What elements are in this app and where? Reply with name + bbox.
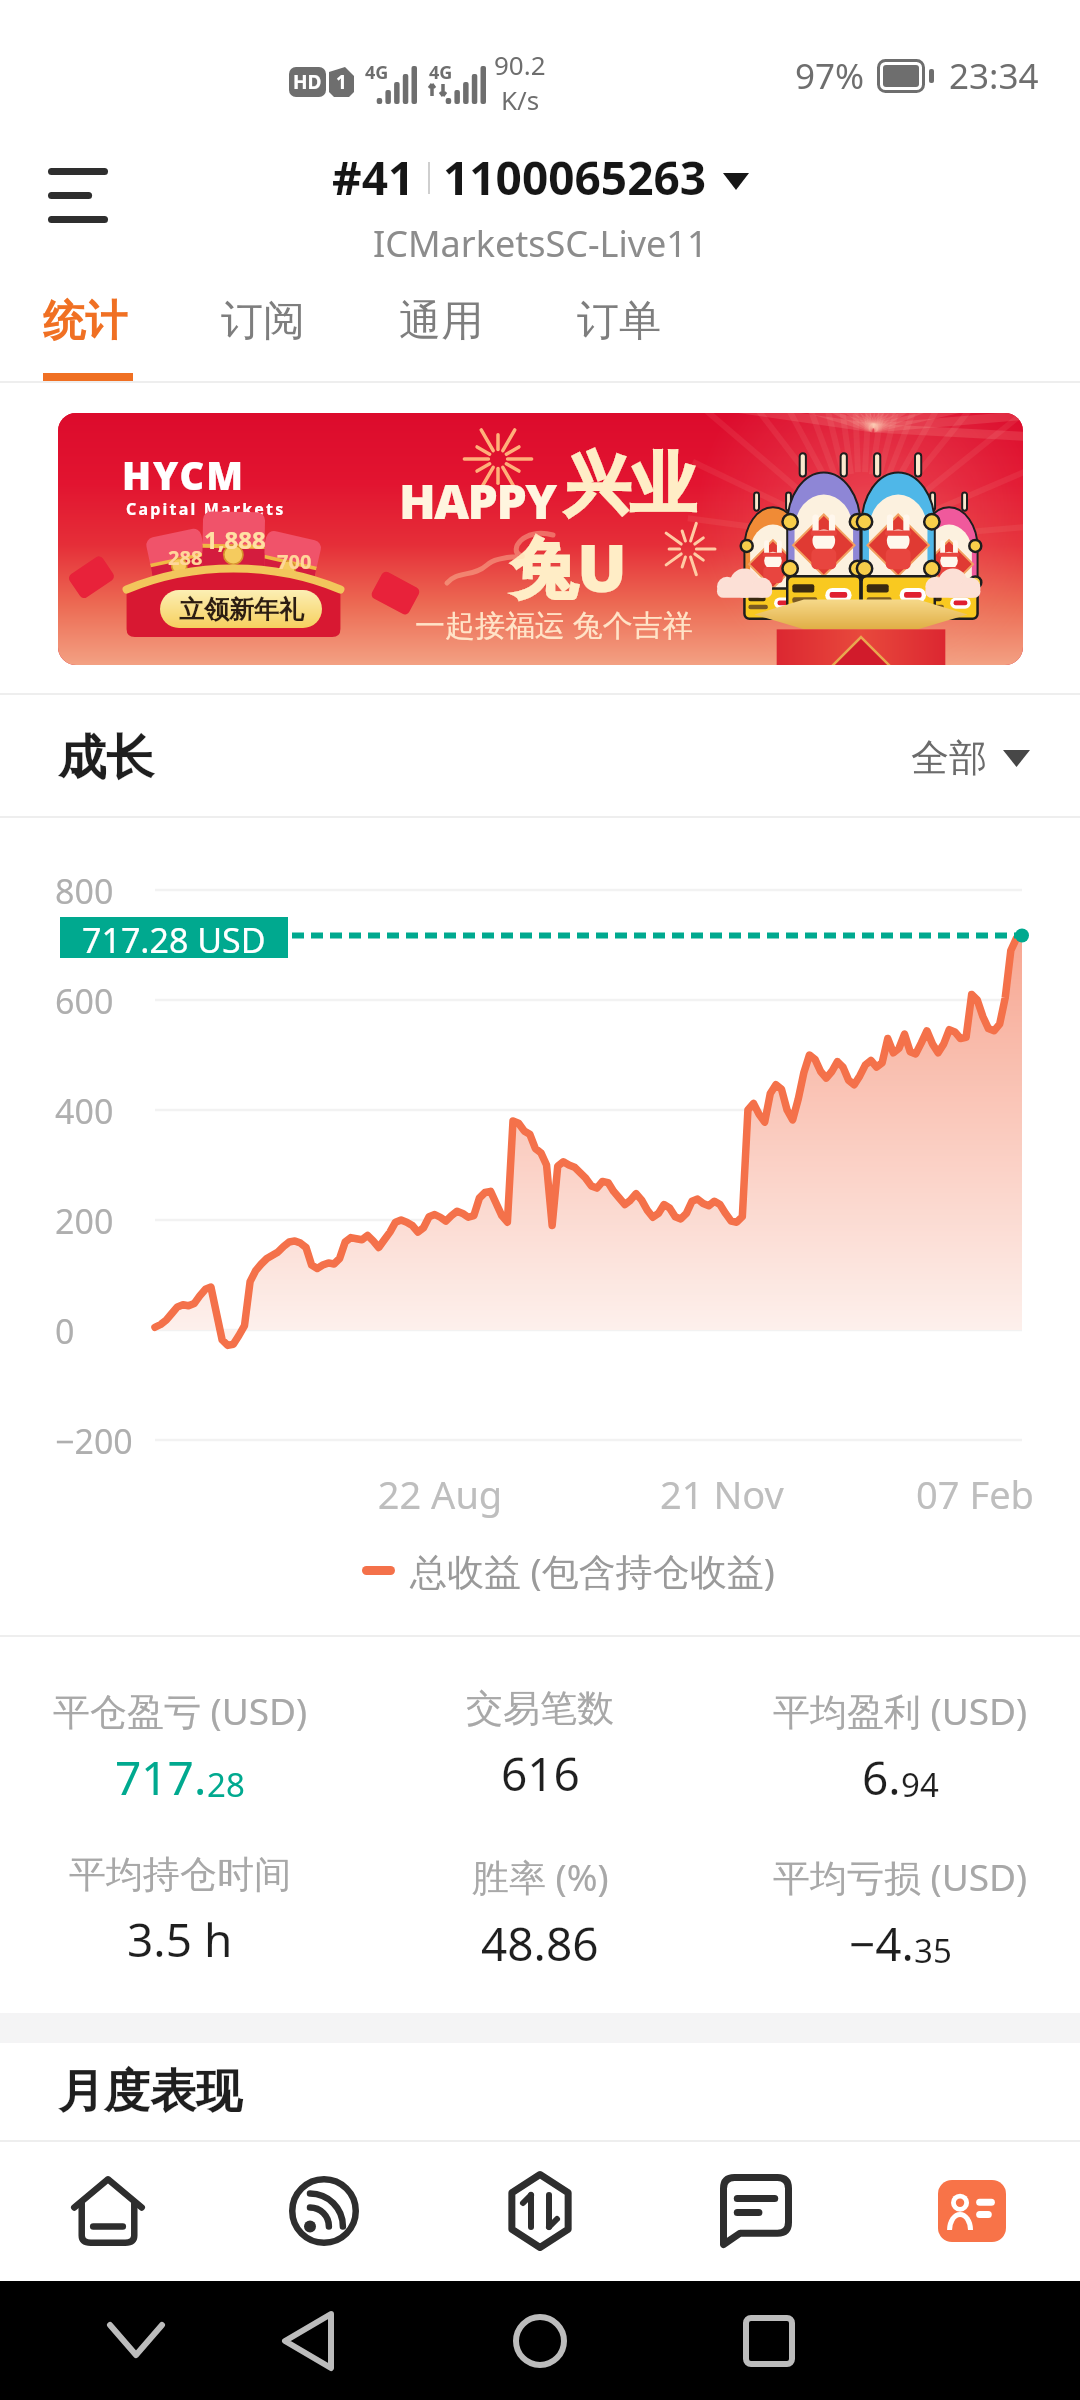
staticText: 48.86 xyxy=(481,1912,599,1975)
staticText: 4G xyxy=(429,60,453,85)
staticText: 400 xyxy=(55,1088,114,1134)
staticText: 35 xyxy=(914,1928,952,1973)
staticText: 4G xyxy=(365,60,389,85)
staticText: 07 Feb xyxy=(875,1468,1075,1520)
button[interactable]: Trade xyxy=(432,2140,648,2281)
staticText: K/s xyxy=(501,82,540,117)
staticText: 统计 xyxy=(43,295,127,348)
staticText: −4. xyxy=(849,1912,914,1975)
staticText: 胜率 (%) xyxy=(472,1851,609,1902)
staticText: 717. xyxy=(115,1746,207,1809)
staticText: Capital Markets xyxy=(126,498,286,520)
staticText: 94 xyxy=(901,1762,939,1807)
staticText: 平均盈利 (USD) xyxy=(773,1685,1028,1736)
staticText: 立领新年礼 xyxy=(179,594,304,625)
staticText: 平均持仓时间 xyxy=(69,1851,291,1898)
staticText: #41 xyxy=(332,146,415,209)
staticText: 全部 xyxy=(911,734,987,782)
staticText: 总收益 (包含持仓收益) xyxy=(410,1545,775,1596)
staticText: 6. xyxy=(862,1746,901,1809)
staticText: 3.5 h xyxy=(127,1908,233,1971)
staticText: 交易笔数 xyxy=(466,1685,614,1732)
staticText: 21 Nov xyxy=(622,1468,822,1520)
staticText: 月度表现 xyxy=(58,2063,242,2121)
button[interactable]: Accounts xyxy=(864,2140,1080,2281)
staticText: HAPPY xyxy=(399,468,556,533)
button[interactable]: 全部 xyxy=(911,734,1030,782)
button[interactable]: Promotion banner xyxy=(58,413,1023,665)
staticText: 700 xyxy=(277,548,312,575)
staticText: 平仓盈亏 (USD) xyxy=(53,1685,308,1736)
staticText: 616 xyxy=(501,1742,580,1805)
staticText: 200 xyxy=(55,1198,114,1244)
staticText: 23:34 xyxy=(949,52,1039,100)
staticText: 97% xyxy=(795,52,865,100)
staticText: ICMarketsSC-Live11 xyxy=(373,219,708,268)
staticText: 717.28 USD xyxy=(82,917,266,958)
staticText: 通用 xyxy=(399,295,483,348)
staticText: 600 xyxy=(55,978,114,1024)
button[interactable]: 订阅 xyxy=(221,280,399,383)
button[interactable]: Quotes xyxy=(216,2140,432,2281)
staticText: HYCM xyxy=(122,449,245,501)
staticText: 1100065263 xyxy=(443,146,707,209)
staticText: 兔U xyxy=(511,521,627,611)
staticText: 一起接福运 兔个吉祥 xyxy=(415,604,693,645)
button[interactable]: 通用 xyxy=(399,280,577,383)
button[interactable]: Home xyxy=(0,2140,216,2281)
staticText: 平均亏损 (USD) xyxy=(773,1851,1028,1902)
button[interactable]: 统计 xyxy=(43,280,221,383)
staticText: 800 xyxy=(55,868,114,914)
staticText: 成长 xyxy=(58,728,154,788)
staticText: 0 xyxy=(55,1308,75,1354)
staticText: 22 Aug xyxy=(340,1468,540,1520)
staticText: 兴业 xyxy=(564,443,696,526)
staticText: 订单 xyxy=(577,295,661,348)
button[interactable]: Menu xyxy=(30,145,126,245)
button[interactable]: #41 xyxy=(324,142,757,213)
button[interactable]: 立领新年礼 xyxy=(160,590,322,628)
staticText: 90.2 xyxy=(494,47,546,82)
staticText: 28 xyxy=(207,1762,245,1807)
staticText: HD xyxy=(293,69,322,95)
staticText: 1 xyxy=(336,69,347,95)
staticText: −200 xyxy=(55,1418,133,1464)
staticText: 288 xyxy=(168,544,203,571)
staticText: 1,888 xyxy=(204,523,266,556)
button[interactable]: Chat xyxy=(648,2140,864,2281)
button[interactable]: 订单 xyxy=(577,280,755,383)
staticText: 订阅 xyxy=(221,295,305,348)
